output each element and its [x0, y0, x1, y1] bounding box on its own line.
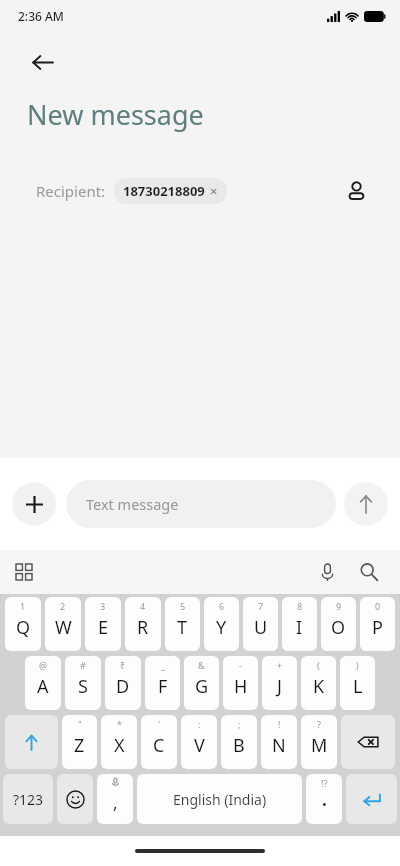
staticText: 5 — [180, 600, 186, 612]
staticText: 1 — [20, 600, 26, 612]
staticText: " — [78, 718, 82, 730]
button[interactable]: Back — [22, 42, 62, 82]
button[interactable]: 4 — [125, 597, 161, 651]
button[interactable]: Emoji — [57, 774, 93, 824]
button[interactable]: 2 — [45, 597, 81, 651]
button[interactable]: ? — [301, 715, 337, 769]
button[interactable]: ) — [340, 656, 375, 710]
button[interactable]: Voice input — [310, 555, 344, 589]
button[interactable]: Comma — [97, 774, 133, 824]
staticText: !? — [321, 777, 328, 789]
staticText: - — [239, 659, 242, 671]
staticText: C — [153, 733, 165, 758]
staticText: 4 — [140, 600, 146, 612]
staticText: A — [37, 674, 49, 699]
staticText: 7 — [258, 600, 264, 612]
staticText: U — [254, 615, 268, 640]
button[interactable]: 9 — [321, 597, 356, 651]
button[interactable]: Keyboard modes — [8, 556, 40, 588]
staticText: 2 — [60, 600, 66, 612]
staticText: O — [331, 615, 346, 640]
staticText: B — [233, 733, 245, 758]
button[interactable]: : — [181, 715, 217, 769]
staticText: × — [210, 182, 218, 200]
staticText: L — [353, 674, 363, 699]
staticText: Q — [16, 615, 31, 640]
button[interactable]: 3 — [85, 597, 121, 651]
button[interactable]: 6 — [204, 597, 239, 651]
staticText: V — [194, 733, 205, 758]
button[interactable]: ( — [301, 656, 336, 710]
button[interactable]: Shift — [5, 715, 58, 769]
staticText: G — [195, 674, 209, 699]
staticText: K — [313, 674, 325, 699]
staticText: P — [372, 615, 383, 640]
button[interactable]: ' — [141, 715, 177, 769]
staticText: M — [311, 733, 328, 758]
staticText: , — [113, 791, 118, 814]
staticText: 6 — [219, 600, 225, 612]
staticText: * — [117, 718, 122, 730]
staticText: X — [114, 733, 125, 758]
staticText: ?123 — [13, 790, 44, 809]
staticText: F — [158, 674, 168, 699]
button[interactable]: Send — [344, 482, 388, 526]
button[interactable]: " — [62, 715, 97, 769]
button[interactable]: ₹ — [105, 656, 141, 710]
staticText: I — [296, 615, 303, 640]
button[interactable]: _ — [145, 656, 180, 710]
staticText: ! — [278, 718, 281, 730]
button[interactable]: Period — [306, 774, 342, 824]
button[interactable]: 5 — [165, 597, 200, 651]
staticText: E — [98, 615, 109, 640]
button[interactable]: 1 — [5, 597, 41, 651]
staticText: ₹ — [120, 659, 126, 671]
staticText: : — [198, 718, 201, 730]
button[interactable]: Enter — [346, 774, 397, 824]
staticText: & — [198, 659, 205, 671]
button[interactable]: Attach — [12, 482, 56, 526]
staticText: New message — [27, 96, 204, 133]
button[interactable]: * — [101, 715, 137, 769]
staticText: + — [277, 659, 283, 671]
button[interactable]: ?123 — [3, 774, 53, 824]
staticText: J — [277, 674, 282, 699]
button[interactable]: # — [65, 656, 101, 710]
button[interactable]: - — [223, 656, 258, 710]
staticText: 18730218809 — [123, 182, 205, 200]
button[interactable]: Text message — [66, 480, 336, 528]
button[interactable]: + — [262, 656, 297, 710]
staticText: T — [177, 615, 188, 640]
staticText: Y — [216, 615, 227, 640]
staticText: Recipient: — [36, 181, 106, 201]
button[interactable]: & — [184, 656, 219, 710]
staticText: English (India) — [173, 790, 267, 809]
staticText: ? — [317, 718, 321, 730]
button[interactable]: Add contact — [338, 173, 374, 209]
button[interactable]: 18730218809 — [114, 178, 227, 204]
staticText: W — [55, 615, 72, 640]
button[interactable]: Backspace — [341, 715, 395, 769]
staticText: @ — [39, 659, 48, 671]
button[interactable]: English (India) — [137, 774, 302, 824]
staticText: # — [80, 659, 86, 671]
staticText: H — [234, 674, 248, 699]
staticText: R — [137, 615, 149, 640]
button[interactable]: ! — [261, 715, 297, 769]
staticText: . — [322, 788, 327, 811]
staticText: Z — [74, 733, 85, 758]
staticText: D — [116, 674, 130, 699]
button[interactable]: 7 — [243, 597, 278, 651]
button[interactable]: ; — [221, 715, 257, 769]
button[interactable]: 0 — [360, 597, 395, 651]
staticText: 2:36 AM — [18, 8, 64, 24]
staticText: ' — [158, 718, 161, 730]
staticText: 9 — [336, 600, 342, 612]
staticText: 8 — [297, 600, 303, 612]
staticText: S — [78, 674, 88, 699]
staticText: 3 — [100, 600, 106, 612]
staticText: _ — [161, 659, 165, 671]
button[interactable]: 8 — [282, 597, 317, 651]
button[interactable]: Search — [352, 555, 386, 589]
button[interactable]: @ — [25, 656, 61, 710]
